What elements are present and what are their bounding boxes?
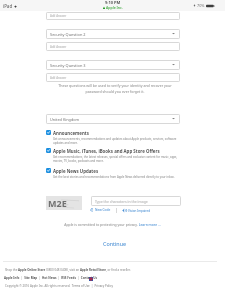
staticText: Apple is committed to protecting your pr…	[55, 222, 170, 227]
staticText: 9:10 PM	[105, 0, 121, 5]
staticText: Apple Music, iTunes, iBooks and App Stor…	[53, 148, 160, 154]
button[interactable]: Security Question 3	[46, 60, 180, 70]
staticText: 70%	[197, 3, 205, 8]
button[interactable]: Apple Music, iTunes, iBooks and App Stor…	[46, 148, 180, 163]
staticText: Get recommendations, the latest releases…	[53, 155, 180, 163]
staticText: Continue	[103, 240, 127, 247]
staticText: United Kingdom	[50, 117, 80, 122]
button[interactable]: Captcha image	[46, 196, 82, 210]
staticText: Copyright © 2016 Apple Inc. All rights r…	[5, 284, 113, 288]
staticText: Type the characters in the image	[95, 199, 148, 204]
staticText: Apple Inc.	[106, 5, 123, 10]
staticText: Get announcements, recommendations and u…	[53, 137, 180, 145]
other: Open menu	[172, 63, 175, 66]
button[interactable]: Continue	[98, 238, 132, 249]
button[interactable]: Announcements	[46, 130, 180, 145]
button[interactable]: New Code	[90, 208, 111, 212]
staticText: Security Question 3	[50, 63, 86, 68]
other: Open menu	[172, 117, 175, 120]
staticText: Vision Impaired	[128, 209, 151, 213]
staticText: Announcements	[53, 130, 89, 136]
staticText: New Code	[95, 208, 111, 212]
staticText: These questions will be used to verify y…	[56, 83, 174, 94]
button[interactable]: Vision Impaired	[122, 208, 151, 213]
button[interactable]: Add Answer	[46, 12, 180, 20]
other: Open menu	[172, 32, 175, 35]
button[interactable]: United Kingdom	[46, 114, 180, 124]
staticText: Add Answer	[50, 45, 67, 49]
staticText: iPad	[3, 3, 13, 9]
staticText: M2E	[48, 197, 67, 209]
button[interactable]: Add Answer	[46, 42, 180, 51]
button[interactable]: Apple News Updates	[46, 168, 180, 179]
staticText: Security Question 2	[50, 32, 86, 37]
staticText: Shop the Apple Online Store (0800 048 04…	[5, 268, 131, 272]
staticText: Apple Info | Site Map | Hot News | RSS F…	[4, 276, 97, 280]
button[interactable]: Add Answer	[46, 73, 180, 82]
staticText: Add Answer	[50, 14, 67, 18]
button[interactable]: Type the characters in the image	[91, 196, 181, 206]
button[interactable]: Security Question 2	[46, 29, 180, 39]
staticText: Apple News Updates	[53, 168, 99, 174]
staticText: Add Answer	[50, 76, 67, 80]
staticText: Get the best stories and recommendations…	[53, 175, 175, 179]
